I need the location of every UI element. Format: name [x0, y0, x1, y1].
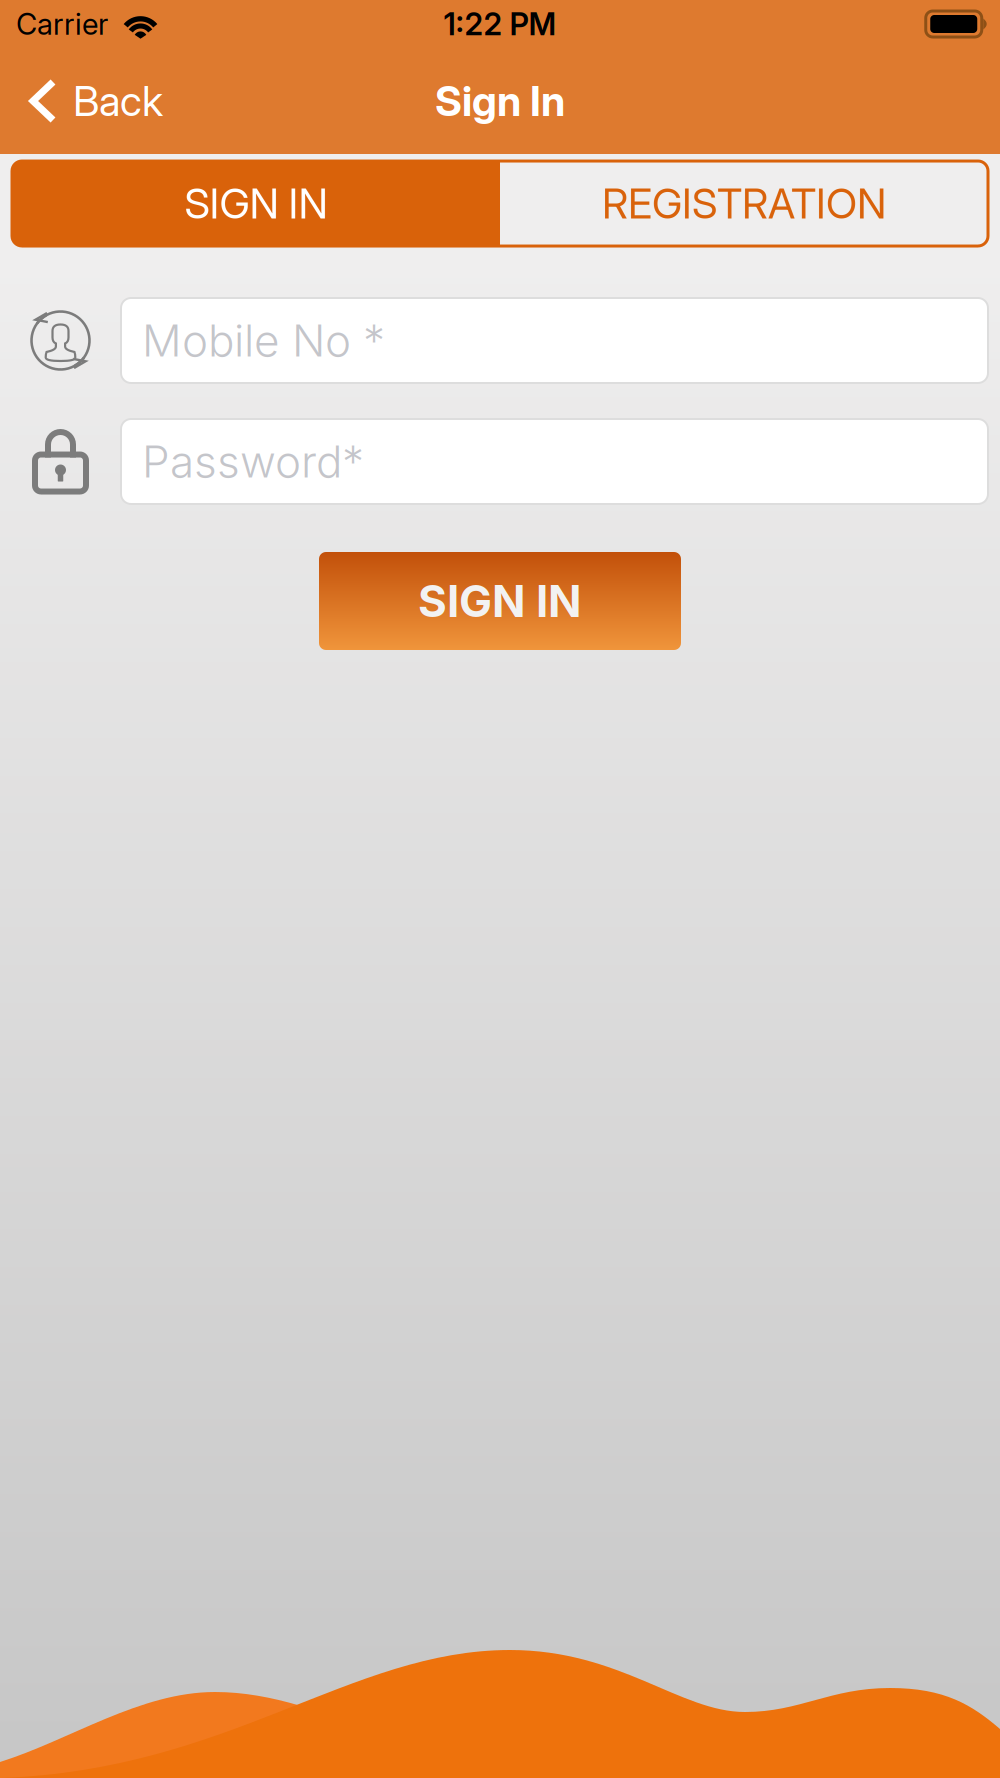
button[interactable]: SIGN IN — [319, 552, 681, 650]
staticText: REGISTRATION — [602, 178, 886, 228]
button[interactable]: Password* — [121, 419, 988, 504]
staticText: Password* — [142, 435, 364, 488]
button[interactable]: Back — [0, 48, 187, 154]
button[interactable]: REGISTRATION — [500, 161, 988, 246]
button[interactable]: SIGN IN — [12, 161, 500, 246]
staticText: Carrier — [16, 6, 108, 42]
staticText: SIGN IN — [418, 574, 582, 628]
staticText: Mobile No * — [142, 314, 385, 367]
staticText: Back — [73, 76, 163, 126]
staticText: Sign In — [435, 76, 565, 126]
staticText: 1:22 PM — [443, 5, 556, 42]
staticText: SIGN IN — [184, 178, 327, 228]
button[interactable]: Mobile No * — [121, 298, 988, 383]
